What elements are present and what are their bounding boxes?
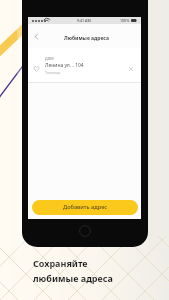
staticText: дом: [45, 55, 54, 61]
button[interactable]: Добавить адрес: [32, 200, 138, 215]
button[interactable]: Remove: [126, 64, 136, 74]
staticText: Сохраняйте: [33, 257, 88, 269]
button[interactable]: дом: [28, 48, 141, 82]
staticText: Любимые адреса: [64, 35, 109, 42]
staticText: Ленина ул. , 104: [45, 62, 84, 69]
staticText: 100%: [120, 18, 130, 23]
staticText: 9:41 AM: [77, 18, 91, 23]
staticText: Теплица: [45, 70, 61, 75]
button[interactable]: Back: [30, 30, 43, 43]
staticText: Добавить адрес: [63, 203, 108, 211]
staticText: любимые адреса: [33, 272, 113, 284]
